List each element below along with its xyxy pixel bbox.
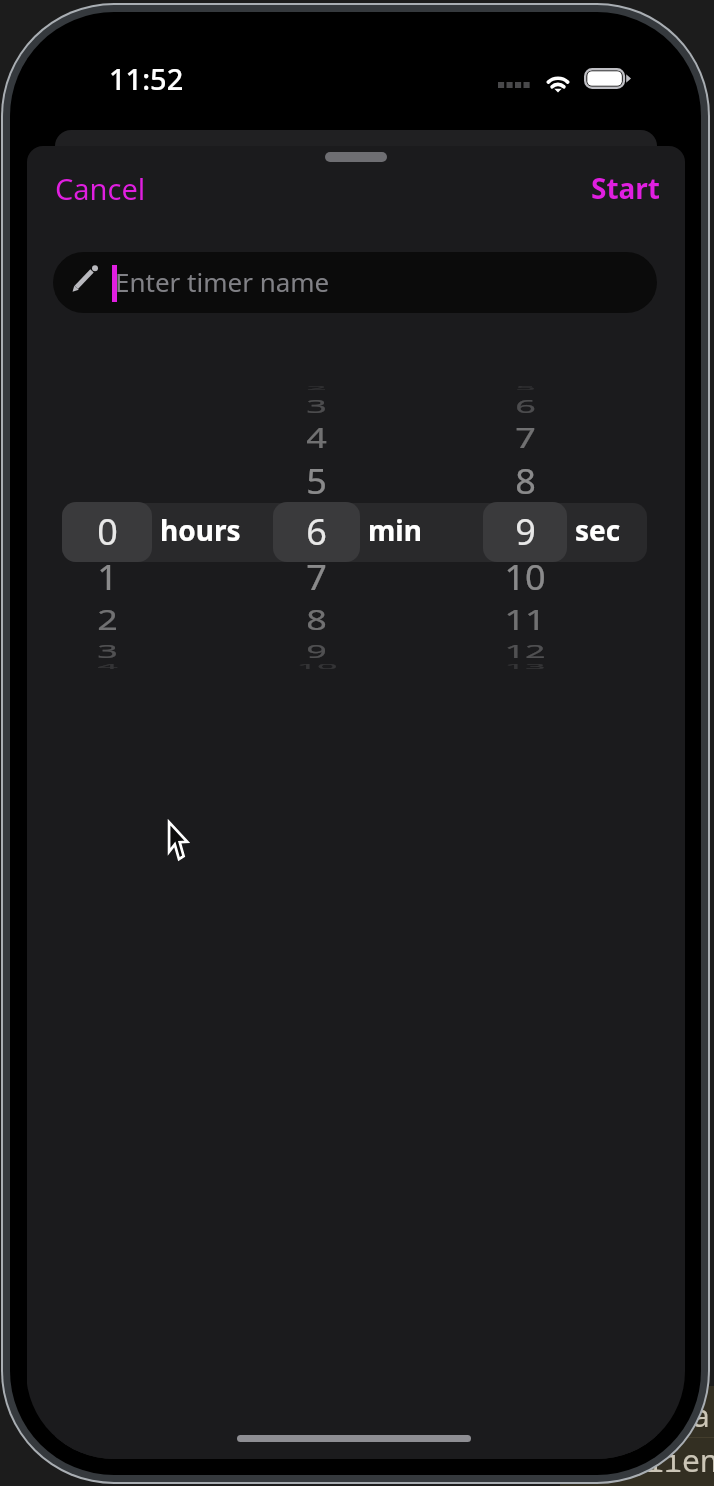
staticText: 11 — [504, 601, 546, 638]
staticText: 8 — [515, 458, 536, 505]
button[interactable]: Enter timer name — [53, 252, 657, 313]
button[interactable]: hours — [62, 502, 152, 562]
button[interactable]: Start — [583, 162, 669, 214]
staticText: a — [692, 1395, 710, 1436]
staticText: 8 — [306, 601, 327, 638]
staticText: 6 — [306, 507, 327, 556]
staticText: 7 — [515, 419, 536, 456]
button[interactable]: Cancel — [47, 162, 154, 215]
staticText: sec — [575, 511, 621, 549]
staticText: 4 — [306, 419, 327, 456]
staticText: 9 — [306, 639, 327, 663]
staticText: 12 — [504, 639, 546, 663]
staticText: 10 — [296, 662, 338, 670]
staticText: 10 — [504, 554, 546, 601]
staticText: 3 — [97, 639, 118, 663]
staticText: 3 — [306, 394, 327, 418]
staticText: lient — [646, 1440, 714, 1481]
staticText: Cancel — [55, 169, 146, 208]
staticText: 1 — [97, 554, 118, 601]
staticText: 9 — [515, 507, 536, 556]
staticText: 5 — [306, 458, 327, 505]
staticText: hours — [160, 511, 241, 549]
staticText: Enter timer name — [115, 264, 330, 299]
staticText: 13 — [504, 662, 546, 670]
staticText: Start — [591, 169, 661, 207]
staticText: 2 — [97, 601, 118, 638]
staticText: 7 — [306, 554, 327, 601]
staticText: 0 — [97, 507, 118, 556]
staticText: min — [368, 511, 422, 549]
staticText: 11:52 — [109, 59, 184, 98]
button[interactable]: sec — [483, 502, 567, 562]
staticText: 4 — [97, 662, 118, 670]
staticText: 6 — [515, 394, 536, 418]
staticText: 2 — [306, 384, 327, 392]
button[interactable]: min — [273, 502, 360, 562]
staticText: 5 — [515, 384, 536, 392]
